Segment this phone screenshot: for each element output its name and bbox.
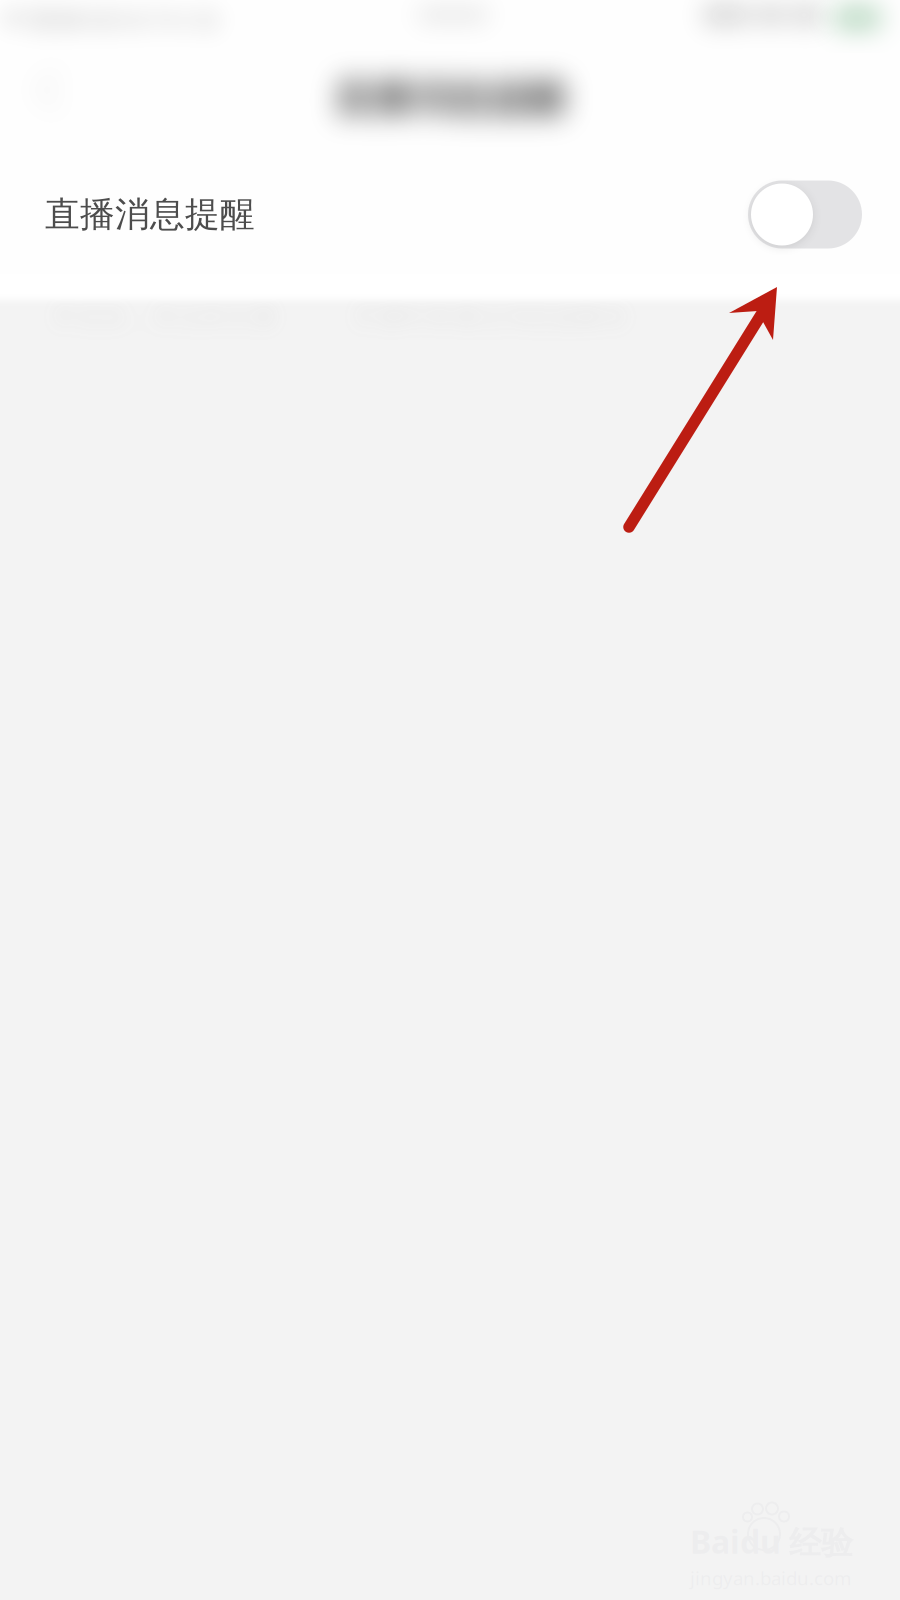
staticText: 直播消息提醒 [45,193,255,236]
button[interactable]: 直播消息提醒 [0,146,900,283]
button[interactable]: Back [0,15,124,165]
